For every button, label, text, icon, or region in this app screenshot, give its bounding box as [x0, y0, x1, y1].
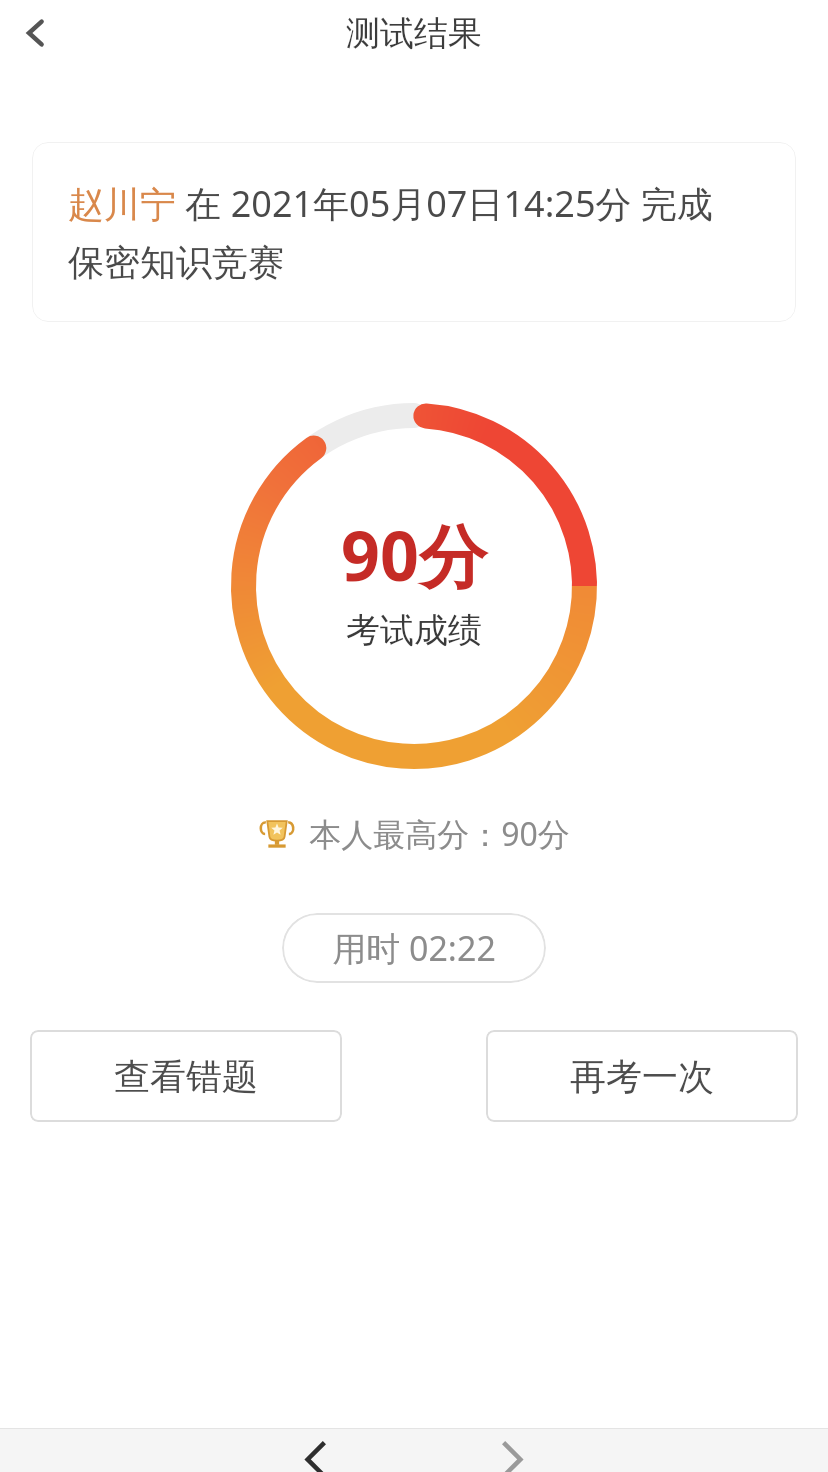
staticText: 本人最高分：90分 — [309, 812, 570, 856]
button[interactable]: 查看错题 — [30, 1030, 342, 1122]
staticText: 考试成绩 — [346, 609, 482, 652]
staticText: 再考一次 — [570, 1054, 714, 1099]
button[interactable]: 再考一次 — [486, 1030, 798, 1122]
staticText: 查看错题 — [114, 1054, 258, 1099]
button[interactable]: 后退 — [268, 1430, 364, 1472]
staticText: 90分 — [341, 508, 487, 601]
staticText: 用时 02:22 — [332, 925, 496, 971]
button[interactable]: 返回 — [0, 0, 70, 66]
button[interactable]: 赵川宁 在 2021年05月07日14:25分 完成 保密知识竞赛 — [32, 142, 796, 322]
button[interactable]: 前进 — [464, 1430, 560, 1472]
button[interactable]: 用时 02:22 — [282, 913, 546, 983]
staticText: 测试结果 — [346, 12, 482, 55]
staticText: 赵川宁 在 2021年05月07日14:25分 完成 保密知识竞赛 — [68, 179, 713, 286]
